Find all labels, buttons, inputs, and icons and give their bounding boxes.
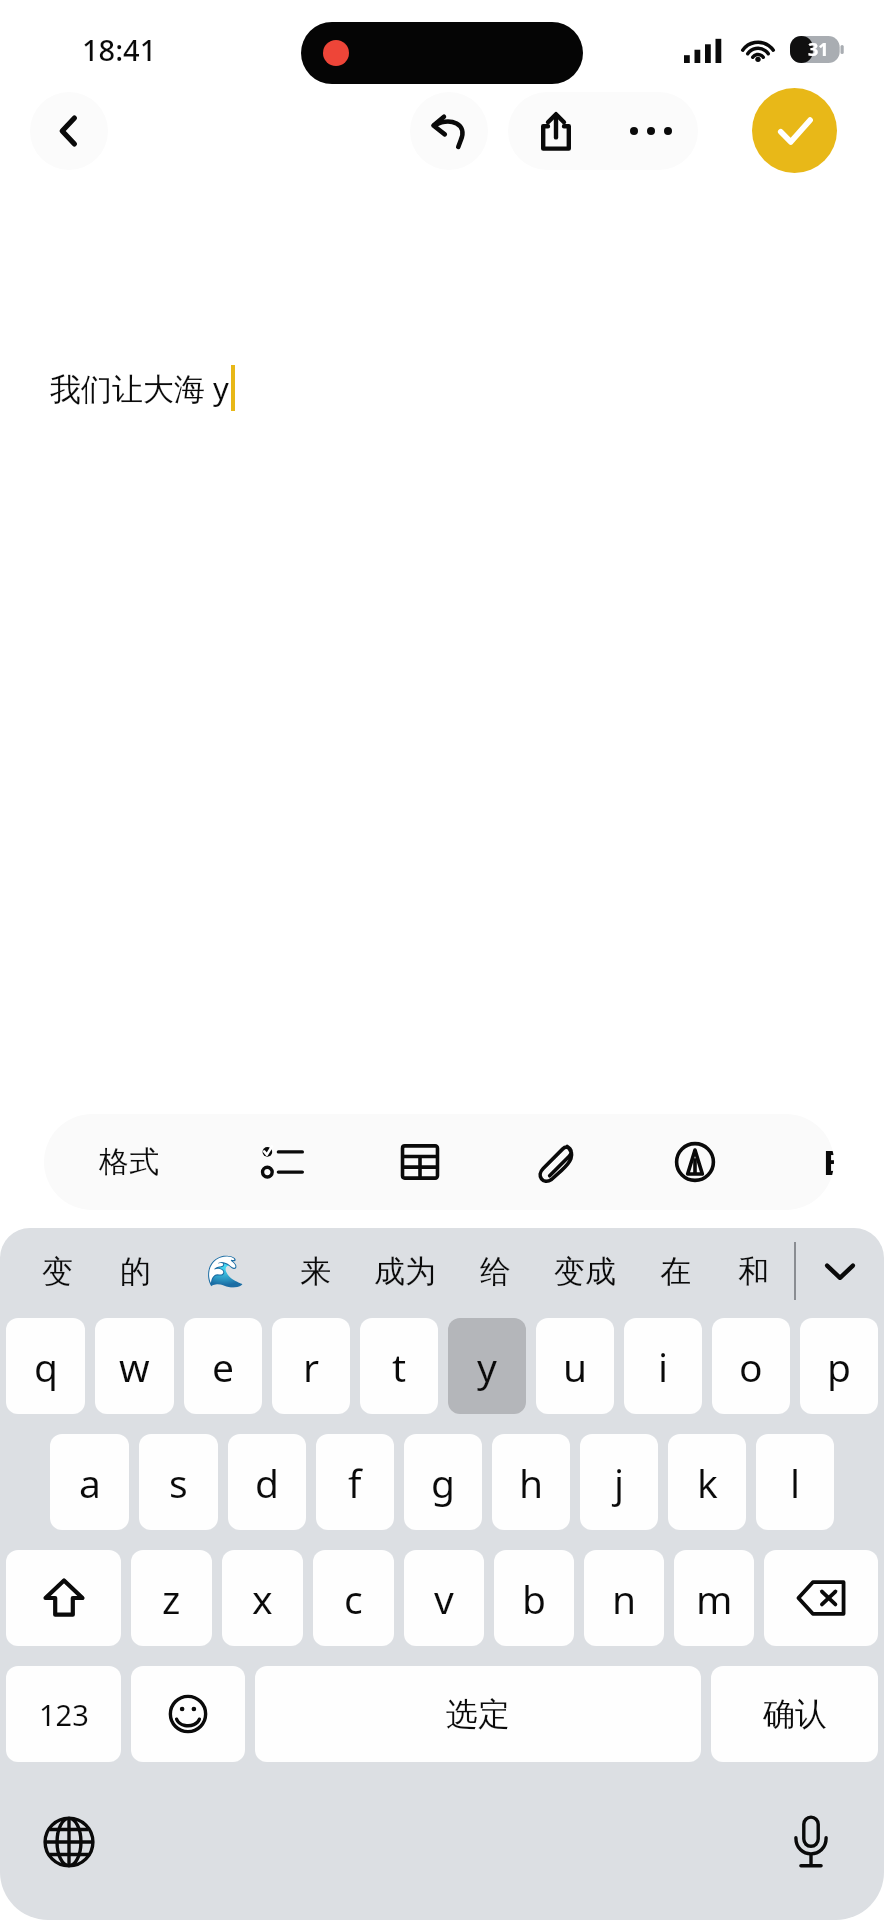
staticText: q (34, 1340, 58, 1393)
staticText: 格式 (99, 1143, 159, 1181)
staticText: 的 (120, 1252, 151, 1291)
button[interactable]: h (492, 1434, 570, 1530)
button[interactable]: Checklist (214, 1114, 351, 1210)
staticText: 🌊 (206, 1253, 245, 1289)
staticText: 成为 (374, 1252, 436, 1291)
button[interactable]: 变 (18, 1228, 96, 1314)
button[interactable]: Voice input (774, 1805, 848, 1879)
staticText: n (612, 1572, 637, 1625)
button[interactable]: Attach file (488, 1114, 626, 1210)
button[interactable]: a (50, 1434, 129, 1530)
staticText: t (392, 1340, 407, 1393)
button[interactable]: 🌊 (174, 1228, 276, 1314)
button[interactable]: 给 (456, 1228, 534, 1314)
button[interactable]: Shift (6, 1550, 121, 1646)
button[interactable]: Table (351, 1114, 488, 1210)
button[interactable]: Draw (626, 1114, 764, 1210)
button[interactable]: k (668, 1434, 746, 1530)
button[interactable]: q (6, 1318, 85, 1414)
button[interactable]: o (712, 1318, 790, 1414)
button[interactable]: m (674, 1550, 754, 1646)
staticText: 我们让大海 y (50, 367, 229, 409)
staticText: b (522, 1572, 546, 1625)
button[interactable]: g (404, 1434, 482, 1530)
staticText: g (431, 1456, 455, 1509)
button[interactable]: l (756, 1434, 834, 1530)
button[interactable]: e (184, 1318, 262, 1414)
button[interactable]: u (536, 1318, 614, 1414)
button[interactable]: 格式 (44, 1114, 214, 1210)
button[interactable]: b (494, 1550, 574, 1646)
button[interactable]: 的 (96, 1228, 174, 1314)
button[interactable]: Emoji (131, 1666, 245, 1762)
staticText: 31 (808, 37, 829, 62)
staticText: d (255, 1456, 279, 1509)
button[interactable]: d (228, 1434, 306, 1530)
button[interactable]: 123 (6, 1666, 121, 1762)
staticText: 和 (738, 1252, 769, 1291)
staticText: e (212, 1340, 234, 1393)
staticText: 在 (660, 1252, 691, 1291)
button[interactable]: 变成 (534, 1228, 636, 1314)
staticText: p (827, 1340, 851, 1393)
staticText: 确认 (763, 1694, 827, 1734)
button[interactable]: Done (752, 88, 837, 173)
button[interactable]: y (448, 1318, 526, 1414)
button[interactable]: i (624, 1318, 702, 1414)
staticText: 变成 (554, 1252, 616, 1291)
button[interactable]: More options (603, 92, 698, 170)
staticText: 来 (300, 1252, 331, 1291)
staticText: B (823, 1139, 834, 1185)
button[interactable]: 在 (636, 1228, 714, 1314)
staticText: c (344, 1572, 363, 1625)
button[interactable]: x (222, 1550, 303, 1646)
button[interactable]: Undo (410, 92, 488, 170)
button[interactable]: v (404, 1550, 484, 1646)
button[interactable]: Share (508, 92, 603, 170)
button[interactable]: Back (30, 92, 108, 170)
button[interactable]: 确认 (711, 1666, 878, 1762)
staticText: 变 (42, 1252, 73, 1291)
button[interactable]: s (139, 1434, 218, 1530)
button[interactable]: 来 (276, 1228, 354, 1314)
button[interactable]: 选定 (255, 1666, 701, 1762)
staticText: w (119, 1340, 150, 1393)
staticText: j (614, 1456, 625, 1509)
button[interactable]: t (360, 1318, 438, 1414)
staticText: k (697, 1456, 718, 1509)
staticText: m (696, 1572, 733, 1625)
button[interactable]: Change keyboard (32, 1805, 106, 1879)
staticText: y (477, 1340, 497, 1393)
staticText: v (434, 1572, 454, 1625)
button[interactable]: n (584, 1550, 664, 1646)
staticText: a (79, 1456, 101, 1509)
button[interactable]: w (95, 1318, 174, 1414)
staticText: l (790, 1456, 801, 1509)
staticText: 选定 (446, 1694, 510, 1734)
button[interactable]: 成为 (354, 1228, 456, 1314)
button[interactable]: j (580, 1434, 658, 1530)
staticText: z (162, 1572, 181, 1625)
staticText: u (563, 1340, 588, 1393)
button[interactable]: p (800, 1318, 878, 1414)
button[interactable]: f (316, 1434, 394, 1530)
staticText: h (519, 1456, 544, 1509)
staticText: f (348, 1456, 362, 1509)
button[interactable]: Backspace (764, 1550, 878, 1646)
staticText: 给 (480, 1252, 511, 1291)
staticText: r (303, 1340, 320, 1393)
staticText: i (658, 1340, 669, 1393)
staticText: s (169, 1456, 188, 1509)
button[interactable]: z (131, 1550, 212, 1646)
staticText: 123 (39, 1695, 89, 1734)
staticText: x (252, 1572, 273, 1625)
staticText: o (739, 1340, 763, 1393)
button[interactable]: r (272, 1318, 350, 1414)
staticText: 18:41 (82, 30, 157, 69)
button[interactable]: c (313, 1550, 394, 1646)
button[interactable]: 和 (714, 1228, 792, 1314)
button[interactable]: Expand candidates (796, 1228, 884, 1314)
